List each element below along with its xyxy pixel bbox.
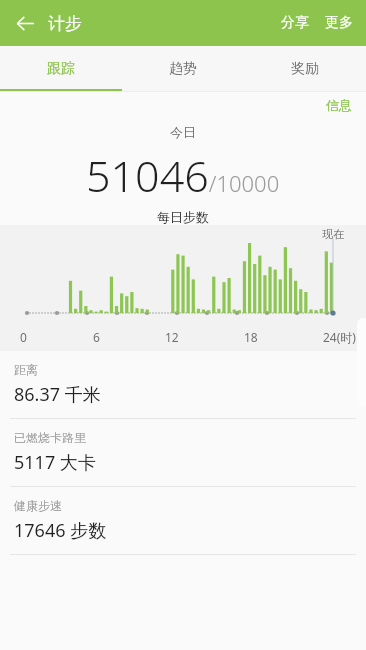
staticText: 18 (244, 329, 258, 345)
staticText: 今日 (170, 124, 196, 140)
button[interactable]: 更多 (318, 4, 366, 42)
staticText: 6 (93, 329, 100, 345)
button[interactable]: 信息 (326, 97, 366, 113)
staticText: 奖励 (291, 60, 319, 78)
staticText: 86.37 千米 (14, 382, 101, 407)
staticText: 已燃烧卡路里 (14, 430, 86, 445)
staticText: 5117 大卡 (14, 450, 96, 475)
staticText: 每日步数 (157, 209, 209, 225)
button[interactable]: 已燃烧卡路里 (0, 419, 366, 486)
staticText: 健康步速 (14, 498, 62, 513)
staticText: 跟踪 (47, 60, 75, 78)
button[interactable]: 奖励 (244, 46, 366, 92)
staticText: 现在 (322, 227, 344, 241)
button[interactable]: 健康步速 (0, 487, 366, 554)
button[interactable]: 距离 (0, 351, 366, 418)
staticText: 51046/10000 (86, 146, 280, 205)
staticText: 计步 (48, 13, 82, 34)
staticText: 距离 (14, 362, 38, 377)
staticText: 17646 步数 (14, 518, 107, 543)
staticText: 信息 (326, 97, 352, 113)
staticText: 分享 (281, 14, 309, 32)
staticText: 12 (165, 329, 179, 345)
button[interactable]: 分享 (272, 4, 318, 42)
button[interactable]: 趋势 (122, 46, 244, 92)
button[interactable]: Back (4, 2, 46, 44)
staticText: 24(时) (323, 329, 356, 345)
button[interactable]: 跟踪 (0, 46, 122, 92)
staticText: 0 (20, 329, 27, 345)
staticText: 更多 (325, 14, 353, 32)
staticText: 趋势 (169, 60, 197, 78)
